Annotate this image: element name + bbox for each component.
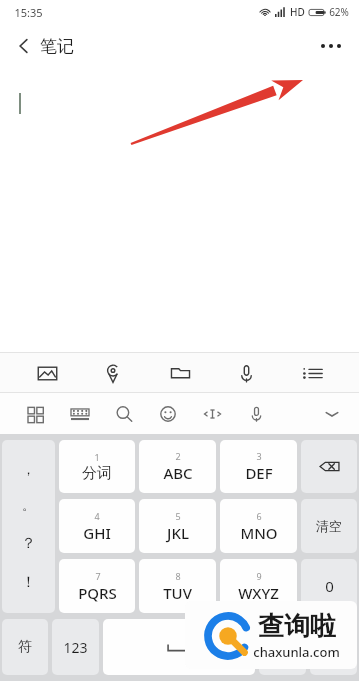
button[interactable]: More options bbox=[311, 26, 351, 66]
staticText: 7 bbox=[95, 570, 101, 582]
button[interactable]: 清空 bbox=[301, 499, 357, 553]
staticText: WXYZ bbox=[238, 583, 279, 603]
button[interactable]: 3 bbox=[220, 440, 297, 493]
button[interactable]: Voice bbox=[216, 355, 276, 391]
button[interactable]: 4 bbox=[59, 499, 135, 553]
staticText: 。 bbox=[22, 497, 35, 513]
staticText: HD bbox=[290, 5, 305, 19]
button[interactable]: Insert image bbox=[17, 355, 77, 391]
button[interactable]: Emoji bbox=[146, 396, 190, 432]
staticText: 清空 bbox=[316, 518, 342, 534]
button[interactable]: ↵ bbox=[310, 619, 357, 675]
button[interactable]: 。 bbox=[259, 619, 306, 675]
button[interactable]: 1 bbox=[59, 440, 135, 493]
staticText: 8 bbox=[175, 570, 181, 582]
staticText: DEF bbox=[245, 463, 273, 483]
staticText: 6 bbox=[256, 510, 262, 522]
button[interactable]: Keyboard layout bbox=[58, 396, 102, 432]
staticText: 1 bbox=[94, 451, 100, 463]
staticText: 。 bbox=[276, 638, 290, 656]
staticText: chaxunla.com bbox=[253, 643, 340, 661]
staticText: 15:35 bbox=[14, 5, 43, 20]
button[interactable]: 2 bbox=[139, 440, 216, 493]
staticText: 62% bbox=[329, 5, 349, 19]
button[interactable]: Backspace bbox=[301, 440, 357, 493]
button[interactable]: Edit cursor bbox=[190, 396, 234, 432]
button[interactable]: Toolbox bbox=[14, 396, 58, 432]
staticText: ABC bbox=[163, 463, 193, 483]
button[interactable]: 符 bbox=[2, 619, 48, 675]
staticText: 分词 bbox=[82, 464, 112, 483]
staticText: ？ bbox=[21, 534, 36, 553]
staticText: TUV bbox=[163, 583, 192, 603]
button[interactable]: Voice input bbox=[234, 396, 278, 432]
button[interactable]: Location bbox=[83, 355, 143, 391]
staticText: PQRS bbox=[78, 583, 117, 603]
staticText: 2 bbox=[175, 450, 181, 462]
button[interactable]: 8 bbox=[139, 559, 216, 613]
button[interactable]: Search bbox=[102, 396, 146, 432]
staticText: 符 bbox=[18, 638, 32, 656]
staticText: MNO bbox=[240, 523, 278, 543]
button[interactable]: 0 bbox=[301, 559, 357, 613]
button[interactable]: Back bbox=[6, 28, 42, 64]
button[interactable]: 5 bbox=[139, 499, 216, 553]
staticText: 3 bbox=[256, 450, 262, 462]
button[interactable]: 6 bbox=[220, 499, 297, 553]
staticText: 123 bbox=[63, 638, 88, 657]
staticText: ， bbox=[22, 461, 35, 477]
button[interactable]: ， bbox=[2, 440, 55, 613]
staticText: ！ bbox=[21, 573, 36, 592]
button[interactable]: 123 bbox=[52, 619, 99, 675]
button[interactable]: 7 bbox=[59, 559, 135, 613]
staticText: 0 bbox=[325, 576, 334, 596]
staticText: 笔记 bbox=[40, 36, 74, 57]
staticText: 5 bbox=[175, 510, 181, 522]
staticText: 4 bbox=[94, 510, 100, 522]
staticText: 9 bbox=[256, 570, 262, 582]
staticText: 查询啦 bbox=[258, 610, 336, 643]
other: Backspace bbox=[301, 440, 357, 493]
button[interactable]: Checklist bbox=[283, 355, 343, 391]
staticText: ↵ bbox=[327, 638, 341, 657]
staticText: GHI bbox=[83, 523, 111, 543]
button[interactable]: Hide keyboard bbox=[315, 396, 349, 432]
button[interactable] bbox=[103, 619, 255, 675]
staticText: JKL bbox=[167, 523, 189, 543]
button[interactable]: 9 bbox=[220, 559, 297, 613]
button[interactable]: Files bbox=[150, 355, 210, 391]
